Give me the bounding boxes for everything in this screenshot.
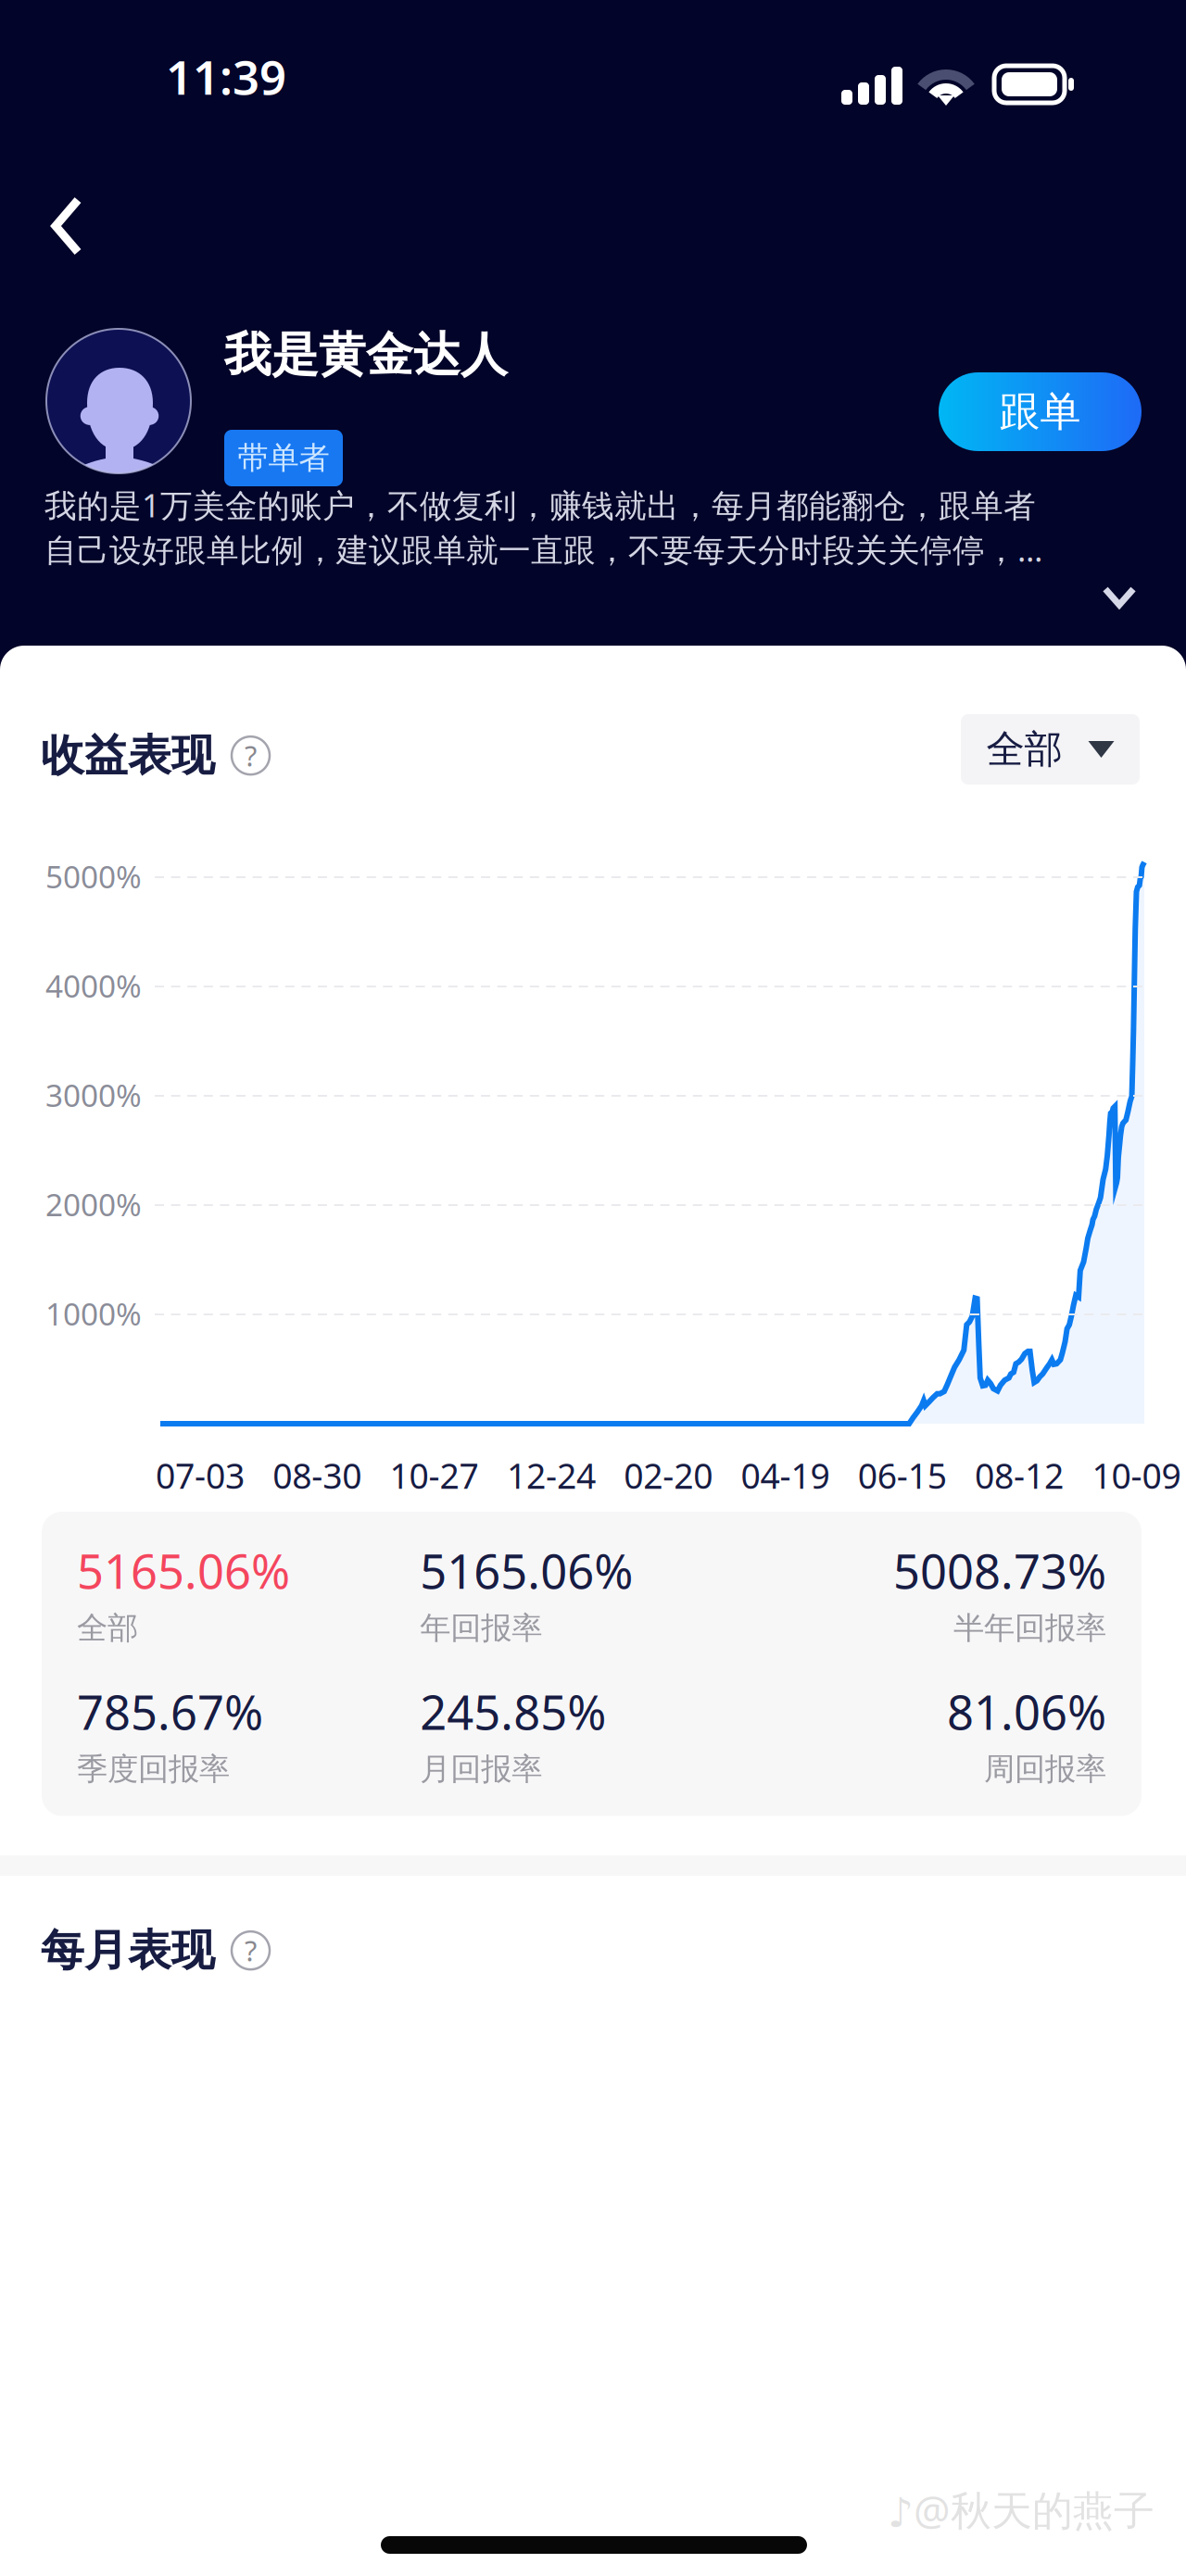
staticText: 周回报率 — [984, 1750, 1106, 1788]
staticText: 带单者 — [238, 439, 329, 477]
staticText: 自己设好跟单比例，建议跟单就一直跟，不要每天分时段关关停停，… — [44, 528, 1042, 571]
staticText: 全部 — [77, 1609, 138, 1647]
button[interactable]: Help — [232, 737, 270, 775]
staticText: 11:39 — [166, 45, 286, 108]
staticText: 年回报率 — [420, 1609, 542, 1647]
staticText: 1000% — [45, 1293, 142, 1334]
staticText: 245.85% — [420, 1680, 606, 1743]
staticText: 2000% — [45, 1184, 142, 1225]
button[interactable]: Back — [39, 178, 132, 274]
staticText: 08-12 — [975, 1452, 1064, 1498]
staticText: 3000% — [45, 1074, 142, 1115]
staticText: 785.67% — [77, 1680, 263, 1743]
staticText: ♪@秋天的燕子 — [888, 2482, 1154, 2537]
staticText: 5165.06% — [77, 1539, 290, 1602]
staticText: 收益表现 — [41, 729, 215, 782]
staticText: 5008.73% — [893, 1539, 1106, 1602]
staticText: 5165.06% — [420, 1539, 633, 1602]
staticText: 全部 — [986, 726, 1062, 773]
staticText: 跟单 — [999, 387, 1081, 437]
staticText: 季度回报率 — [77, 1750, 230, 1788]
button[interactable]: Expand description — [1101, 584, 1140, 611]
staticText: 我是黄金达人 — [224, 326, 508, 384]
staticText: 半年回报率 — [953, 1609, 1106, 1647]
staticText: 04-19 — [741, 1452, 830, 1498]
staticText: 06-15 — [858, 1452, 947, 1498]
staticText: 07-03 — [156, 1452, 245, 1498]
staticText: 08-30 — [273, 1452, 362, 1498]
staticText: 月回报率 — [420, 1750, 542, 1788]
button[interactable]: Help — [232, 1931, 270, 1969]
staticText: 81.06% — [947, 1680, 1106, 1743]
staticText: 我的是1万美金的账户，不做复利，赚钱就出，每月都能翻仓，跟单者 — [44, 484, 1036, 526]
staticText: 4000% — [45, 965, 142, 1006]
button[interactable]: 全部 — [961, 714, 1140, 785]
staticText: 10-09 — [1092, 1452, 1181, 1498]
staticText: 12-24 — [507, 1452, 596, 1498]
staticText: 02-20 — [624, 1452, 713, 1498]
button[interactable]: 跟单 — [939, 372, 1142, 451]
staticText: ? — [245, 737, 257, 774]
staticText: 10-27 — [390, 1452, 479, 1498]
staticText: 5000% — [45, 856, 142, 897]
staticText: ? — [245, 1932, 257, 1969]
staticText: 每月表现 — [41, 1924, 215, 1977]
